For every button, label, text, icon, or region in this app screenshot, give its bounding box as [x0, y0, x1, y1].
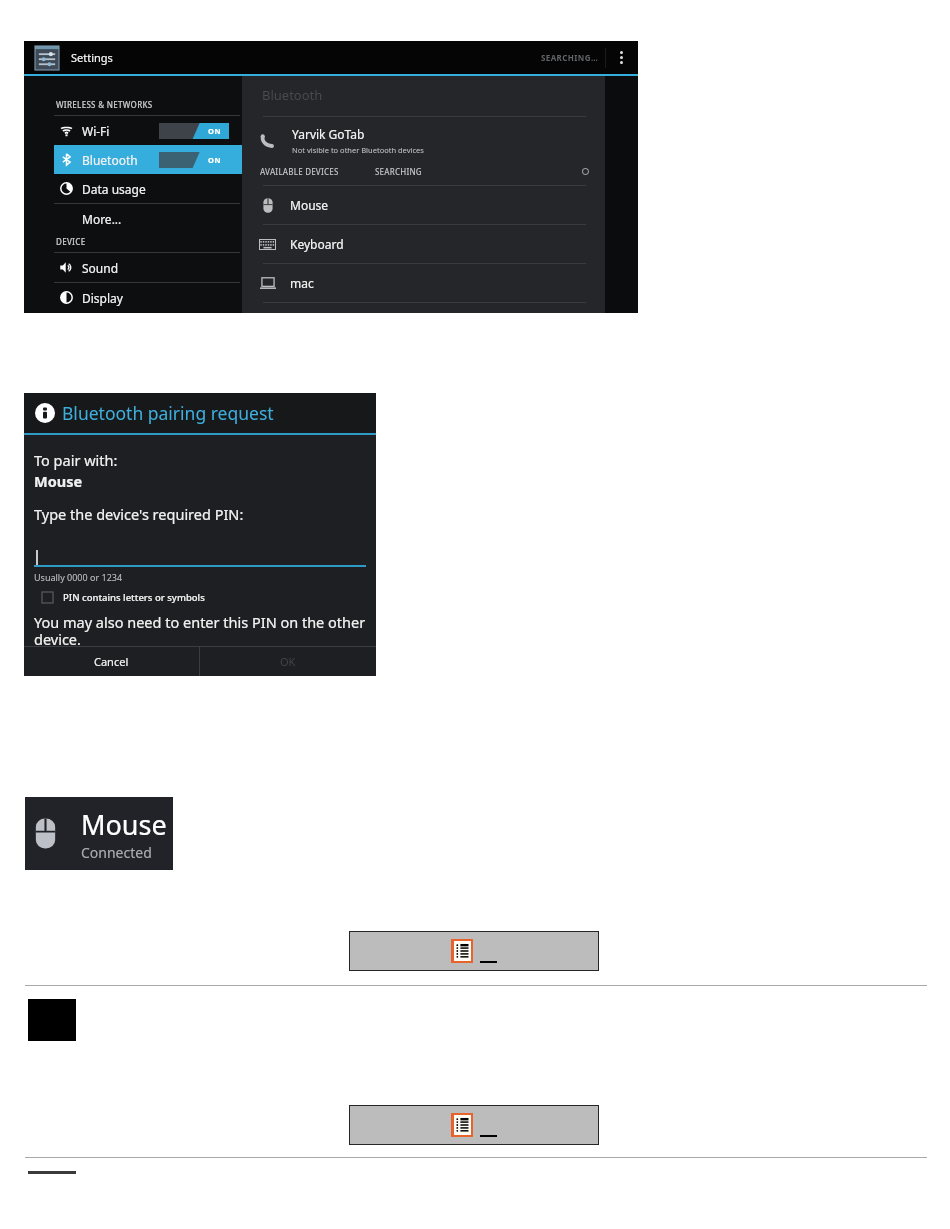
staticText: OK: [280, 654, 296, 669]
staticText: Usually 0000 or 1234: [34, 571, 123, 583]
staticText: mac: [290, 275, 314, 291]
staticText: Cancel: [94, 654, 129, 669]
button[interactable]: Mouse: [25, 797, 173, 870]
staticText: Display: [82, 290, 123, 306]
button[interactable]: Bluetooth: [54, 145, 242, 174]
staticText: To pair with:: [34, 450, 118, 470]
button[interactable]: Display: [54, 283, 242, 312]
button[interactable]: mac: [242, 264, 605, 302]
staticText: Sound: [82, 260, 119, 276]
staticText: Wi-Fi: [82, 123, 110, 139]
button[interactable]: PIN contains letters or symbols: [34, 591, 205, 604]
staticText: Yarvik GoTab: [292, 126, 365, 142]
button[interactable]: More...: [54, 204, 242, 233]
button[interactable]: More options: [606, 41, 636, 74]
staticText: Mouse: [34, 471, 83, 491]
button[interactable]: [349, 1105, 599, 1145]
button[interactable]: [349, 931, 599, 971]
staticText: SEARCHING…: [541, 52, 599, 63]
button[interactable]: Sound: [54, 253, 242, 282]
staticText: AVAILABLE DEVICES: [260, 166, 339, 177]
staticText: Connected: [81, 843, 152, 862]
staticText: Data usage: [82, 181, 146, 197]
button[interactable]: Yarvik GoTab: [242, 117, 605, 164]
staticText: Bluetooth pairing request: [62, 401, 274, 425]
button[interactable]: Mouse: [242, 186, 605, 224]
button[interactable]: Keyboard: [242, 225, 605, 263]
button[interactable]: Wi-Fi: [54, 116, 242, 145]
staticText: You may also need to enter this PIN on t…: [34, 612, 366, 646]
staticText: Keyboard: [290, 236, 344, 252]
staticText: Type the device's required PIN:: [34, 504, 244, 524]
staticText: Bluetooth: [262, 86, 323, 104]
staticText: ON: [208, 155, 222, 165]
staticText: WIRELESS & NETWORKS: [56, 99, 153, 110]
staticText: DEVICE: [56, 236, 86, 247]
button[interactable]: Cancel: [24, 647, 199, 676]
staticText: More...: [82, 211, 122, 227]
staticText: ON: [208, 126, 222, 136]
staticText: PIN contains letters or symbols: [63, 591, 205, 604]
staticText: SEARCHING: [375, 166, 422, 177]
staticText: Mouse: [290, 197, 329, 213]
staticText: Settings: [71, 50, 113, 65]
staticText: Not visible to other Bluetooth devices: [292, 145, 424, 155]
button[interactable]: Data usage: [54, 174, 242, 203]
staticText: Mouse: [81, 806, 167, 843]
staticText: Bluetooth: [82, 152, 138, 168]
